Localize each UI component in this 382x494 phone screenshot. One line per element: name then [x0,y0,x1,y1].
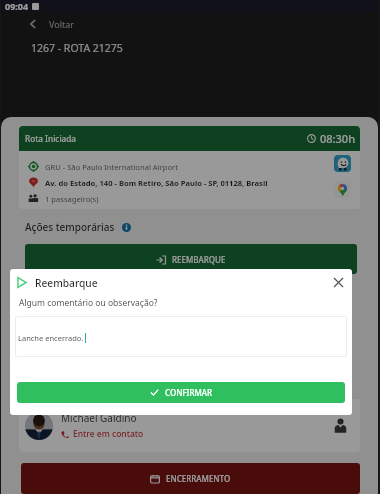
button[interactable]: Michael Galdino [19,399,360,452]
staticText: Rota Iniciada [25,133,77,144]
staticText: 1 passageiro(s) [45,194,99,204]
staticText: Lanche encerrado. [18,333,84,343]
staticText: 08:30h [320,131,356,146]
staticText: ENCERRAMENTO [166,473,231,484]
staticText: Algum comentário ou observação? [19,297,158,309]
button[interactable]: Fechar [327,274,349,291]
staticText: 1267 - ROTA 21275 [31,41,123,55]
other: Passageiro [332,417,349,434]
staticText: REEMBARQUE [172,254,226,265]
staticText: Reembarque [35,276,98,290]
button[interactable]: CONFIRMAR [17,382,345,403]
button[interactable]: Voltar [1,12,378,36]
button[interactable]: REEMBARQUE [25,244,357,274]
staticText: Michael Galdino [61,411,137,425]
button[interactable]: Lanche encerrado. [15,316,347,357]
button[interactable]: Google Maps [334,181,351,198]
staticText: Av. do Estado, 140 - Bom Retiro, São Pau… [45,178,268,188]
button[interactable]: Waze [334,155,351,172]
staticText: GRU - São Paulo International Airport [45,162,178,172]
staticText: Ações temporárias [25,220,115,234]
staticText: Entre em contato [73,428,144,440]
staticText: CONFIRMAR [165,387,213,398]
staticText: 09:04 [5,0,29,12]
staticText: Voltar [49,18,75,30]
button[interactable]: ENCERRAMENTO [21,463,360,494]
